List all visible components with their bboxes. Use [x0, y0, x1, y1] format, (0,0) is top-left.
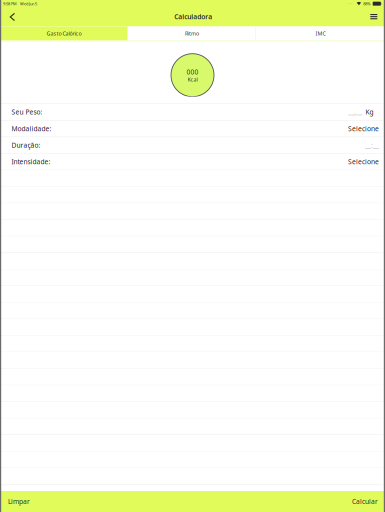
staticText: Gasto Calórico	[46, 30, 81, 37]
staticText: __,__	[348, 108, 362, 116]
staticText: IMC	[315, 30, 325, 37]
button[interactable]: Ritmo	[128, 26, 256, 40]
button[interactable]: IMC	[256, 26, 385, 40]
staticText: Limpar	[8, 497, 30, 506]
staticText: Intensidade:	[12, 157, 51, 166]
button[interactable]: Intensidade:	[0, 154, 385, 170]
staticText: 88%	[363, 1, 370, 6]
button[interactable]: Gasto Calórico	[0, 26, 128, 40]
staticText: Ritmo	[185, 30, 199, 37]
staticText: Seu Peso:	[12, 108, 43, 116]
button[interactable]: Limpar	[0, 491, 38, 512]
button[interactable]: Duração:	[0, 137, 385, 154]
staticText: 000	[186, 67, 198, 76]
staticText: Modalidade:	[12, 124, 52, 133]
staticText: Kg	[365, 108, 373, 116]
button[interactable]: Menu	[362, 10, 385, 26]
button[interactable]: Modalidade:	[0, 120, 385, 137]
staticText: Kcal	[187, 76, 197, 83]
staticText: Calculadora	[174, 12, 212, 21]
staticText: Calcular	[352, 497, 378, 506]
staticText: Selecione	[348, 124, 379, 133]
button[interactable]: Calcular	[344, 491, 385, 512]
staticText: Selecione	[348, 157, 379, 166]
staticText: Wed Jun 5	[17, 1, 37, 6]
staticText: __:__	[365, 141, 379, 150]
staticText: Duração:	[12, 141, 41, 150]
staticText: 9:58 PM	[3, 1, 17, 6]
button[interactable]: Back	[0, 10, 25, 26]
button[interactable]: Seu Peso:	[0, 104, 385, 121]
